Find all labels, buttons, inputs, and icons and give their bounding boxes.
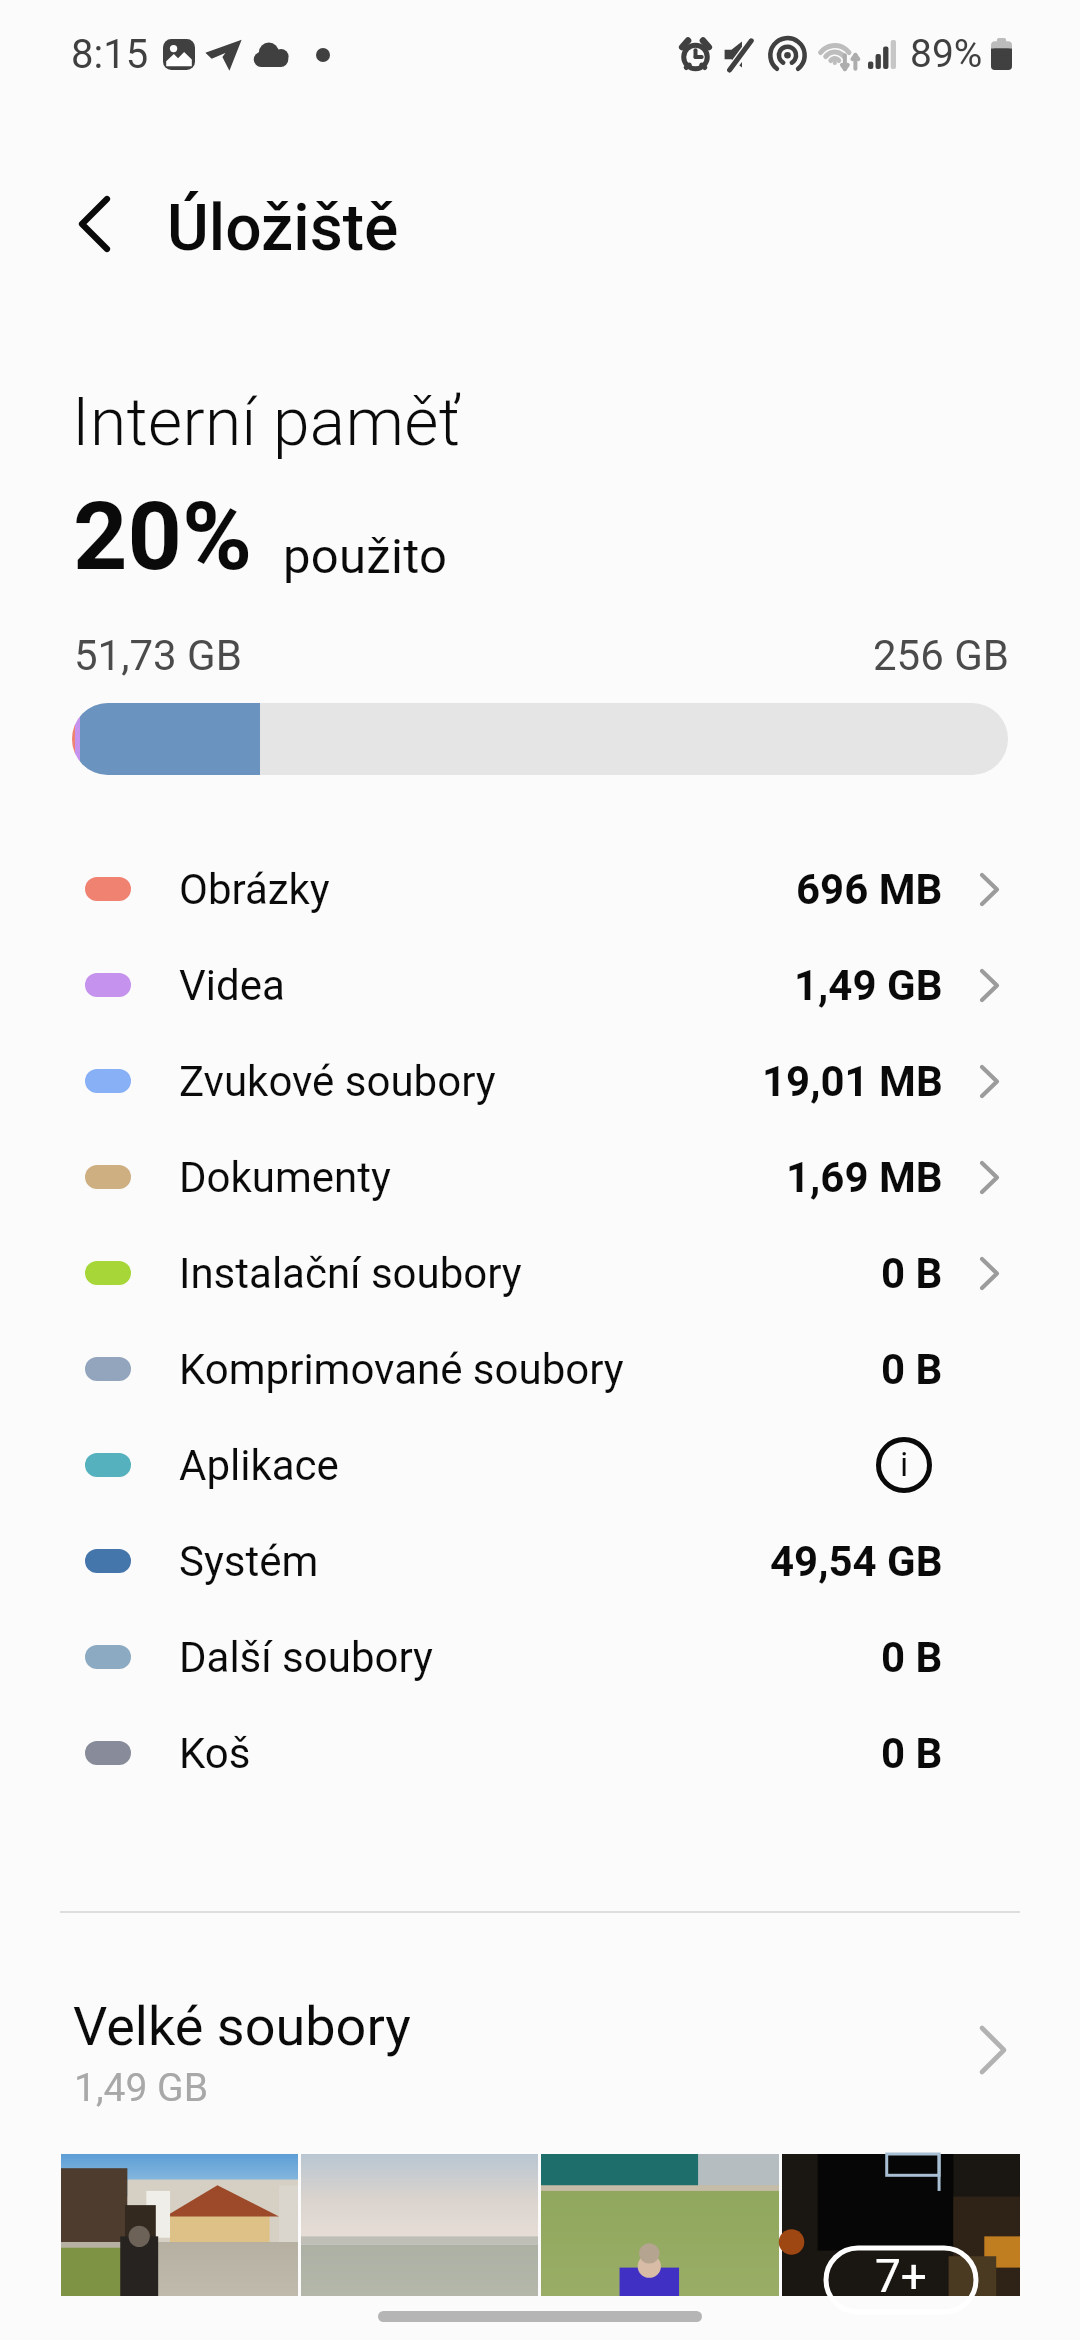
button[interactable]: Aplikace <box>0 1417 1080 1513</box>
button[interactable]: More photos <box>782 2154 1020 2296</box>
staticText: 0 B <box>881 1345 943 1394</box>
button[interactable]: Velké soubory <box>0 1955 1080 2150</box>
staticText: Zvukové soubory <box>179 1057 496 1106</box>
button[interactable]: Back <box>48 178 140 270</box>
staticText: 256 GB <box>873 631 1010 680</box>
staticText: Instalační soubory <box>179 1249 522 1298</box>
staticText: 8:15 <box>71 31 149 78</box>
staticText: 7+ <box>875 2249 927 2303</box>
other: Velké soubory <box>950 2007 1036 2093</box>
button[interactable]: Photo 1 <box>61 2154 298 2296</box>
button[interactable]: Videa <box>0 937 1080 1033</box>
button[interactable]: Photo 3 <box>541 2154 779 2296</box>
staticText: Další soubory <box>179 1633 433 1682</box>
staticText: Koš <box>179 1729 251 1778</box>
staticText: 0 B <box>881 1729 943 1778</box>
staticText: 20% <box>73 481 253 592</box>
staticText: Aplikace <box>179 1441 339 1490</box>
staticText: Interní paměť <box>72 384 462 461</box>
staticText: Dokumenty <box>179 1153 391 1202</box>
button[interactable]: Zvukové soubory <box>0 1033 1080 1129</box>
button[interactable]: Další soubory <box>0 1609 1080 1705</box>
staticText: Obrázky <box>179 865 330 914</box>
staticText: Komprimované soubory <box>179 1345 624 1394</box>
staticText: 1,69 MB <box>786 1153 943 1202</box>
button[interactable]: Koš <box>0 1705 1080 1801</box>
staticText: 51,73 GB <box>74 631 242 680</box>
staticText: Velké soubory <box>73 1995 411 2058</box>
staticText: 0 B <box>881 1249 943 1298</box>
staticText: Videa <box>179 961 285 1010</box>
button[interactable]: Dokumenty <box>0 1129 1080 1225</box>
staticText: 19,01 MB <box>762 1057 943 1106</box>
staticText: 89% <box>910 31 983 77</box>
staticText: použito <box>283 528 448 585</box>
staticText: i <box>900 1444 909 1484</box>
staticText: 696 MB <box>796 865 943 914</box>
staticText: Systém <box>179 1537 319 1586</box>
staticText: 49,54 GB <box>770 1537 943 1586</box>
staticText: 0 B <box>881 1633 943 1682</box>
button[interactable]: Instalační soubory <box>0 1225 1080 1321</box>
staticText: 1,49 GB <box>74 2065 208 2111</box>
button[interactable]: Photo 2 <box>301 2154 538 2296</box>
button[interactable]: Komprimované soubory <box>0 1321 1080 1417</box>
button[interactable]: Systém <box>0 1513 1080 1609</box>
button[interactable]: Obrázky <box>0 841 1080 937</box>
staticText: 1,49 GB <box>794 961 943 1010</box>
staticText: Úložiště <box>167 191 399 266</box>
